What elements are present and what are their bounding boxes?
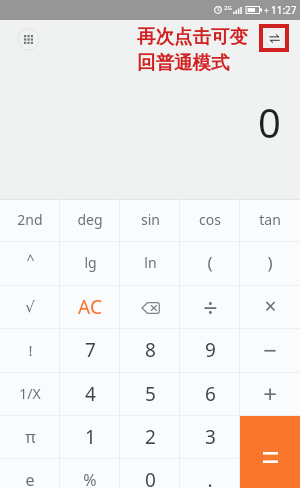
staticText: . <box>207 467 213 488</box>
staticText: π <box>25 426 36 448</box>
button[interactable]: 1/X <box>0 373 60 416</box>
staticText: 1/X <box>19 384 41 403</box>
button[interactable]: × <box>240 286 300 329</box>
staticText: 2 <box>145 424 156 450</box>
staticText: 1 <box>85 424 96 450</box>
staticText: ÷ <box>203 290 218 324</box>
button[interactable] <box>240 459 300 488</box>
button[interactable]: 5 <box>120 373 180 416</box>
staticText: 再次点击可变 <box>137 25 248 48</box>
staticText: 8 <box>145 337 156 363</box>
staticText: lg <box>84 253 97 272</box>
button[interactable]: 2 <box>120 416 180 459</box>
staticText: 7 <box>85 337 96 363</box>
button[interactable]: lg <box>60 242 120 285</box>
staticText: × <box>264 292 277 321</box>
staticText: 回普通模式 <box>137 51 230 74</box>
staticText: + <box>263 377 277 410</box>
button[interactable]: 7 <box>60 329 120 372</box>
staticText: ) <box>267 251 273 274</box>
button[interactable]: deg <box>60 199 120 242</box>
staticText: deg <box>77 210 103 229</box>
staticText: 2G <box>224 4 232 12</box>
staticText: 2nd <box>17 210 43 229</box>
staticText: 9 <box>205 337 216 363</box>
button[interactable]: 0 <box>120 459 180 488</box>
button[interactable]: cos <box>180 199 240 242</box>
staticText: AC <box>78 294 102 320</box>
staticText: 4 <box>85 381 96 407</box>
staticText: + <box>264 5 269 16</box>
staticText: 0 <box>145 467 156 488</box>
button[interactable]: 3 <box>180 416 240 459</box>
button[interactable]: Switch calculator mode <box>264 28 285 49</box>
button[interactable]: . <box>180 459 240 488</box>
button[interactable]: % <box>60 459 120 488</box>
staticText: 3 <box>205 424 216 450</box>
button[interactable]: 1 <box>60 416 120 459</box>
button[interactable]: 4 <box>60 373 120 416</box>
button[interactable] <box>240 416 300 459</box>
button[interactable]: ) <box>240 242 300 285</box>
staticText: ( <box>207 251 213 274</box>
staticText: ^ <box>26 250 35 269</box>
button[interactable]: AC <box>60 286 120 329</box>
button[interactable]: ÷ <box>180 286 240 329</box>
button[interactable]: 8 <box>120 329 180 372</box>
button[interactable]: π <box>0 416 60 459</box>
staticText: e <box>25 469 35 488</box>
staticText: √ <box>25 298 35 315</box>
button[interactable]: tan <box>240 199 300 242</box>
staticText: ! <box>28 340 33 360</box>
button[interactable]: Backspace <box>120 286 180 329</box>
button[interactable]: e <box>0 459 60 488</box>
staticText: 5 <box>145 381 156 407</box>
staticText: 6 <box>205 381 216 407</box>
button[interactable]: Keypad menu <box>17 28 40 51</box>
staticText: − <box>263 333 277 366</box>
button[interactable]: 6 <box>180 373 240 416</box>
button[interactable]: + <box>240 373 300 416</box>
button[interactable]: ^ <box>0 242 60 285</box>
button[interactable]: 2nd <box>0 199 60 242</box>
staticText: cos <box>199 210 221 229</box>
other: Backspace <box>141 302 160 314</box>
button[interactable]: √ <box>0 286 60 329</box>
button[interactable]: ! <box>0 329 60 372</box>
staticText: 0 <box>258 95 281 149</box>
staticText: % <box>83 469 97 488</box>
button[interactable]: ( <box>180 242 240 285</box>
staticText: 11:27 <box>271 3 297 17</box>
button[interactable]: sin <box>120 199 180 242</box>
staticText: sin <box>141 210 160 229</box>
staticText: tan <box>259 210 281 229</box>
button[interactable]: − <box>240 329 300 372</box>
button[interactable]: ln <box>120 242 180 285</box>
button[interactable]: Equals <box>240 416 300 488</box>
staticText: ln <box>144 253 157 272</box>
button[interactable]: 9 <box>180 329 240 372</box>
